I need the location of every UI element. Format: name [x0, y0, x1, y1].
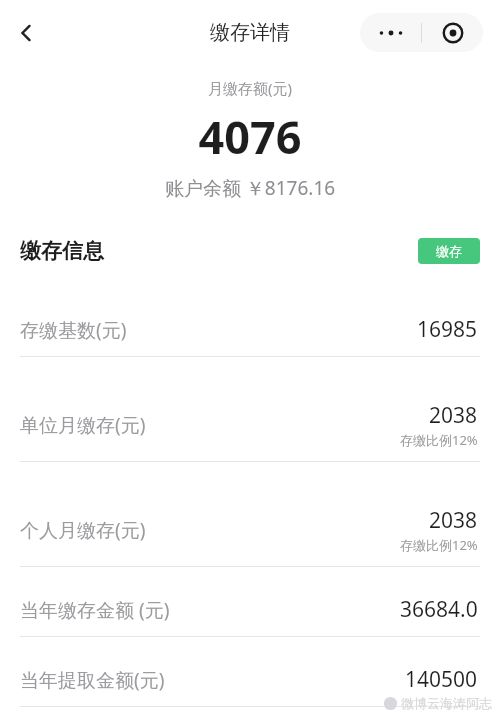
- staticText: 缴存信息: [20, 238, 104, 264]
- staticText: 存缴比例12%: [400, 431, 478, 449]
- button[interactable]: More options: [360, 13, 421, 52]
- staticText: 当年提取金额(元): [20, 667, 165, 693]
- staticText: 缴存: [436, 243, 462, 259]
- button[interactable]: 缴存: [418, 238, 480, 264]
- staticText: 单位月缴存(元): [20, 412, 146, 438]
- staticText: 16985: [417, 315, 478, 344]
- staticText: 账户余额 ￥8176.16: [0, 175, 500, 201]
- button[interactable]: 当年缴存金额 (元): [0, 567, 500, 636]
- staticText: 缴存详情: [210, 20, 290, 45]
- staticText: 存缴比例12%: [400, 536, 478, 554]
- staticText: 微博云海涛阿志: [401, 695, 492, 711]
- button[interactable]: Back: [4, 11, 48, 55]
- staticText: 140500: [405, 665, 478, 694]
- button[interactable]: 存缴基数(元): [0, 275, 500, 356]
- staticText: 36684.0: [400, 595, 478, 624]
- button[interactable]: 当年提取金额(元): [0, 637, 500, 706]
- staticText: 2038: [429, 401, 478, 430]
- button[interactable]: Close: [422, 13, 483, 52]
- staticText: 4076: [0, 106, 500, 167]
- staticText: 个人月缴存(元): [20, 517, 146, 543]
- staticText: 当年缴存金额 (元): [20, 597, 170, 623]
- staticText: 月缴存额(元): [0, 78, 500, 98]
- button[interactable]: 单位月缴存(元): [0, 357, 500, 461]
- button[interactable]: 个人月缴存(元): [0, 462, 500, 566]
- button[interactable]: 上年结转余额(元): [0, 707, 500, 715]
- staticText: 存缴基数(元): [20, 317, 127, 343]
- staticText: 2038: [429, 506, 478, 535]
